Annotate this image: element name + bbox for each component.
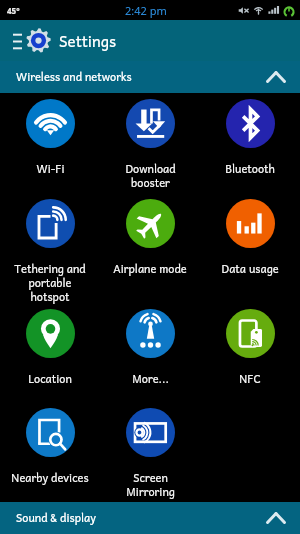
staticText: Airplane mode (113, 260, 187, 278)
staticText: 2:42 pm (125, 3, 167, 18)
button[interactable]: Tethering and portable hotspot (0, 199, 100, 309)
staticText: Sound & display (16, 509, 96, 527)
staticText: Screen Mirroring (126, 469, 175, 501)
staticText: More... (132, 370, 169, 388)
staticText: Location (28, 370, 72, 388)
staticText: 45° (7, 5, 20, 16)
button[interactable]: Screen Mirroring (100, 408, 200, 502)
button[interactable]: Wireless and networks (0, 61, 300, 93)
staticText: Bluetooth (225, 160, 275, 178)
button[interactable]: Nearby devices (0, 408, 100, 502)
button[interactable]: Sound & display (0, 502, 300, 534)
staticText: NFC (239, 370, 261, 388)
button[interactable]: Location (0, 309, 100, 408)
staticText: Data usage (221, 260, 279, 278)
button[interactable]: Data usage (200, 199, 300, 309)
button[interactable]: Download booster (100, 99, 200, 199)
button[interactable]: NFC (200, 309, 300, 408)
staticText: Wi-Fi (36, 160, 65, 178)
button[interactable]: Wi-Fi (0, 99, 100, 199)
staticText: Settings (59, 29, 116, 53)
staticText: Nearby devices (11, 469, 89, 487)
staticText: Download booster (125, 160, 176, 192)
button[interactable]: Menu (9, 29, 26, 53)
button[interactable]: More... (100, 309, 200, 408)
button[interactable]: Bluetooth (200, 99, 300, 199)
button[interactable]: Airplane mode (100, 199, 200, 309)
staticText: Tethering and portable hotspot (14, 260, 86, 306)
staticText: Wireless and networks (16, 68, 132, 86)
